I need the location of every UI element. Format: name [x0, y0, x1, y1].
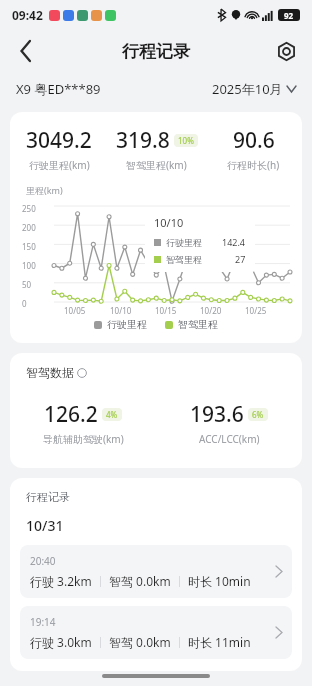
staticText: 250: [22, 203, 36, 214]
staticText: 智驾 0.0km: [109, 634, 171, 650]
staticText: 3049.2: [26, 126, 92, 155]
staticText: 10/20: [200, 305, 222, 316]
staticText: 智驾里程(km): [126, 158, 187, 172]
staticText: X9 粤ED***89: [16, 80, 101, 98]
staticText: 20:40: [30, 554, 56, 568]
staticText: 行驶里程: [166, 237, 202, 248]
staticText: 行程记录: [26, 490, 70, 504]
staticText: 10/05: [64, 305, 86, 316]
button[interactable]: 19:14: [20, 606, 292, 659]
staticText: 27: [235, 253, 246, 265]
staticText: 19:14: [30, 615, 56, 629]
staticText: ACC/LCC(km): [199, 432, 260, 446]
staticText: 智驾 0.0km: [109, 573, 171, 589]
staticText: 10/31: [26, 516, 64, 535]
staticText: 10%: [178, 135, 194, 146]
staticText: 193.6: [190, 400, 244, 429]
staticText: 4%: [106, 409, 118, 420]
staticText: 时长 11min: [188, 634, 251, 650]
staticText: 126.2: [44, 400, 98, 429]
button[interactable]: Back: [6, 31, 46, 71]
staticText: 10/10: [154, 215, 184, 230]
button[interactable]: Settings: [266, 31, 306, 71]
staticText: 行程时长(h): [227, 158, 280, 172]
staticText: 09:42: [12, 7, 43, 23]
staticText: 智驾里程: [166, 254, 202, 265]
staticText: 行程记录: [122, 41, 190, 62]
staticText: 时长 10min: [188, 573, 251, 589]
staticText: 100: [22, 260, 36, 271]
staticText: 行驶 3.0km: [30, 634, 92, 650]
staticText: 319.8: [116, 126, 170, 155]
staticText: 行驶 3.2km: [30, 573, 92, 589]
button[interactable]: 20:40: [20, 545, 292, 598]
staticText: 导航辅助驾驶(km): [43, 432, 124, 446]
staticText: 6%: [252, 409, 264, 420]
staticText: 200: [22, 222, 36, 233]
staticText: 智驾数据: [26, 365, 74, 380]
staticText: 50: [22, 279, 32, 290]
staticText: 智驾里程: [178, 318, 218, 331]
staticText: 10/10: [110, 305, 132, 316]
staticText: 0: [22, 298, 27, 309]
staticText: 行驶里程: [107, 318, 147, 331]
staticText: 10/15: [155, 305, 177, 316]
staticText: 行驶里程(km): [29, 158, 90, 172]
staticText: 92: [284, 10, 294, 21]
staticText: 142.4: [222, 236, 246, 248]
staticText: 2025年10月: [212, 80, 283, 98]
staticText: 里程(km): [26, 184, 63, 196]
staticText: 150: [22, 241, 36, 252]
button[interactable]: 2025年10月: [212, 80, 296, 98]
staticText: 10/25: [245, 305, 267, 316]
staticText: 90.6: [233, 126, 275, 155]
